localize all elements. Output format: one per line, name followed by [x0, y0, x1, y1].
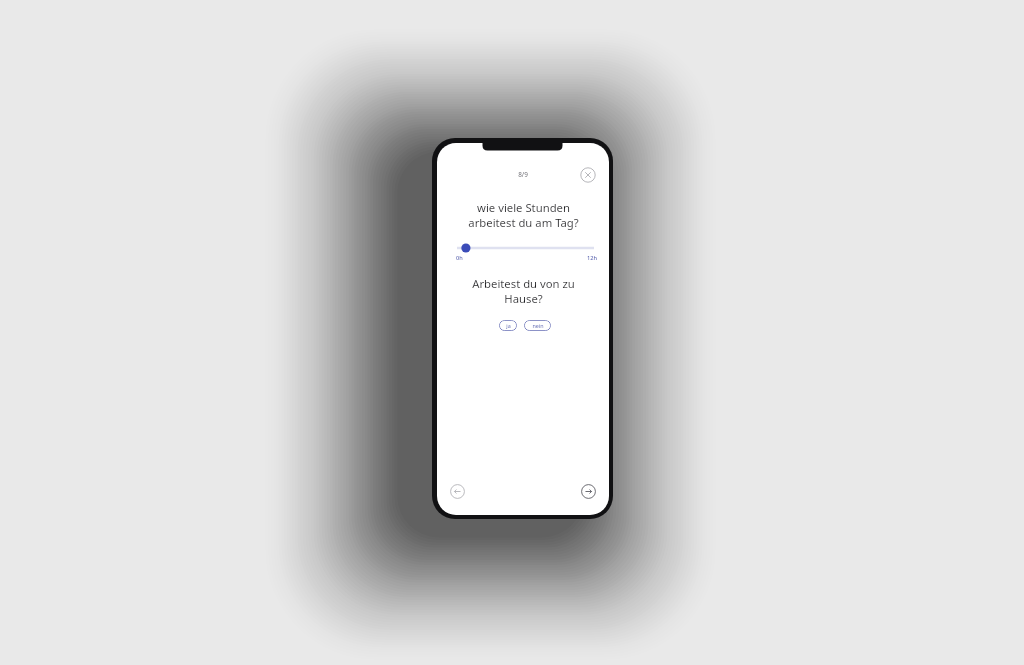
button[interactable]: Schließen — [580, 167, 596, 183]
button[interactable]: Weiter — [581, 484, 596, 499]
button[interactable]: ja — [499, 320, 517, 331]
button[interactable]: Stunden pro Tag Regler — [449, 239, 597, 257]
button[interactable]: Zurück — [450, 484, 465, 499]
button[interactable]: nein — [524, 320, 551, 331]
staticText: Arbeitest du von zu Hause? — [472, 276, 575, 306]
staticText: wie viele Stunden arbeitest du am Tag? — [468, 200, 579, 230]
staticText: 12h — [587, 254, 597, 262]
staticText: 8/9 — [518, 170, 528, 179]
staticText: 0h — [456, 254, 463, 262]
staticText: nein — [532, 322, 544, 329]
staticText: ja — [506, 322, 511, 329]
